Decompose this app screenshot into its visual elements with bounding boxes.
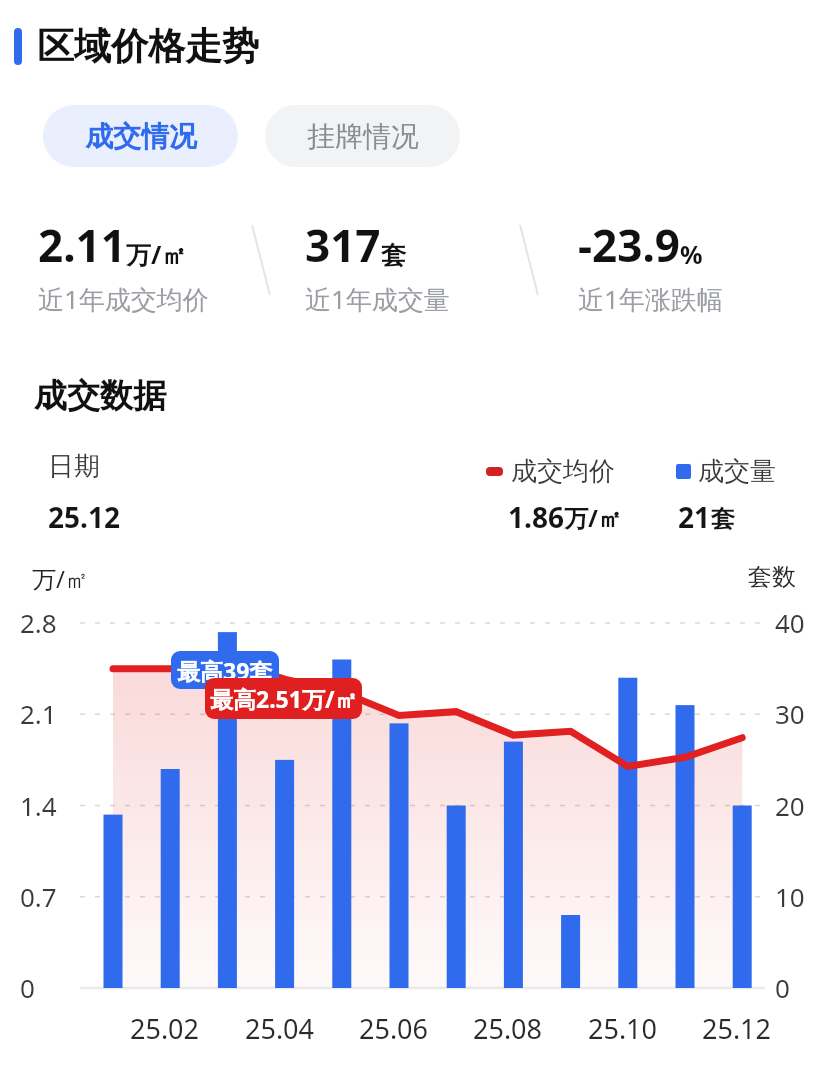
staticText: 区域价格走势	[37, 23, 259, 70]
staticText: 25.02	[130, 1010, 200, 1047]
staticText: 挂牌情况	[307, 119, 419, 154]
staticText: 21	[678, 498, 711, 536]
staticText: %	[680, 237, 703, 271]
staticText: 套数	[748, 562, 796, 592]
staticText: 25.08	[473, 1010, 543, 1047]
staticText: 2.11	[38, 215, 126, 275]
staticText: 0	[20, 970, 35, 1005]
staticText: 成交情况	[85, 119, 197, 154]
staticText: 40	[775, 605, 805, 640]
staticText: 0	[775, 970, 790, 1005]
staticText: 万/㎡	[126, 237, 187, 271]
staticText: 25.06	[359, 1010, 429, 1047]
staticText: 成交量	[698, 455, 776, 488]
staticText: 万/㎡	[564, 501, 622, 534]
staticText: 1.86	[508, 498, 564, 536]
staticText: 最高2.51万/㎡	[210, 683, 358, 714]
staticText: 近1年成交量	[305, 281, 450, 317]
staticText: 0.7	[20, 879, 57, 914]
staticText: 最高39套	[177, 655, 273, 686]
staticText: 30	[775, 696, 805, 731]
staticText: 1.4	[20, 788, 57, 823]
staticText: 近1年成交均价	[38, 281, 209, 317]
staticText: 日期	[48, 450, 100, 483]
staticText: 25.10	[588, 1010, 658, 1047]
staticText: 25.12	[48, 498, 120, 536]
staticText: 成交数据	[34, 375, 166, 417]
button[interactable]: 挂牌情况	[265, 105, 460, 167]
staticText: 317	[305, 215, 381, 275]
staticText: 万/㎡	[32, 562, 89, 595]
staticText: 近1年涨跌幅	[578, 281, 723, 317]
staticText: 套	[711, 504, 735, 534]
staticText: 10	[775, 879, 805, 914]
staticText: 成交均价	[511, 455, 615, 488]
staticText: 2.8	[20, 605, 57, 640]
staticText: 2.1	[20, 696, 57, 731]
staticText: 25.04	[245, 1010, 315, 1047]
button[interactable]: 成交情况	[43, 105, 238, 167]
staticText: 25.12	[702, 1010, 772, 1047]
staticText: 20	[775, 788, 805, 823]
staticText: 套	[381, 240, 406, 271]
staticText: -23.9	[578, 215, 680, 275]
